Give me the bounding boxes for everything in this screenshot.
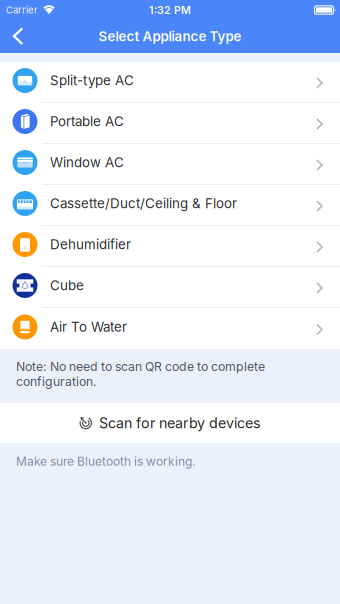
staticText: 1:32 PM: [149, 3, 191, 16]
staticText: Window AC: [50, 154, 124, 170]
staticText: Carrier: [6, 4, 38, 16]
button[interactable]: Scan for nearby devices: [0, 403, 340, 443]
button[interactable]: Cassette/Duct/Ceiling & Floor: [0, 185, 340, 226]
button[interactable]: Back: [0, 20, 34, 53]
staticText: Dehumidifier: [50, 236, 131, 252]
staticText: Air To Water: [50, 319, 127, 335]
staticText: Select Appliance Type: [98, 28, 241, 44]
staticText: Cassette/Duct/Ceiling & Floor: [50, 195, 237, 211]
button[interactable]: Split-type AC: [0, 62, 340, 103]
staticText: Portable AC: [50, 113, 124, 129]
staticText: Scan for nearby devices: [99, 414, 261, 432]
button[interactable]: Window AC: [0, 144, 340, 185]
button[interactable]: Cube: [0, 267, 340, 308]
staticText: Make sure Bluetooth is working.: [16, 454, 195, 468]
staticText: Note: No need to scan QR code to complet…: [16, 359, 265, 389]
button[interactable]: Dehumidifier: [0, 226, 340, 267]
button[interactable]: Portable AC: [0, 103, 340, 144]
staticText: Split-type AC: [50, 72, 134, 88]
button[interactable]: Air To Water: [0, 308, 340, 349]
staticText: Cube: [50, 277, 84, 293]
